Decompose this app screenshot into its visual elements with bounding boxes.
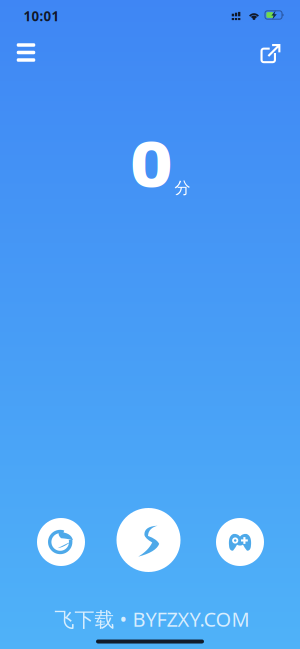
staticText: 分 [174,178,190,198]
button[interactable]: Menu [4,30,48,74]
staticText: 飞下载 • BYFZXY.COM [54,606,249,632]
button[interactable]: Share [248,32,292,76]
button[interactable]: Browser [37,518,85,566]
button[interactable]: Games [216,518,264,566]
staticText: 10:01 [23,7,59,25]
staticText: 0 [130,130,173,200]
button[interactable]: Start acceleration [116,508,180,572]
